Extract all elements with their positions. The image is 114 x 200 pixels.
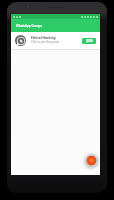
staticText: Click to join this group bbox=[31, 40, 60, 44]
staticText: Ethical Hacking bbox=[31, 36, 56, 40]
staticText: JOIN bbox=[86, 39, 93, 43]
staticText: WhatsApp Groups bbox=[16, 24, 42, 28]
button[interactable]: Ethical Hacking bbox=[11, 32, 100, 49]
button[interactable]: JOIN bbox=[82, 38, 96, 44]
button[interactable]: Add new group bbox=[84, 153, 99, 168]
button[interactable]: WhatsApp Groups bbox=[11, 19, 100, 32]
